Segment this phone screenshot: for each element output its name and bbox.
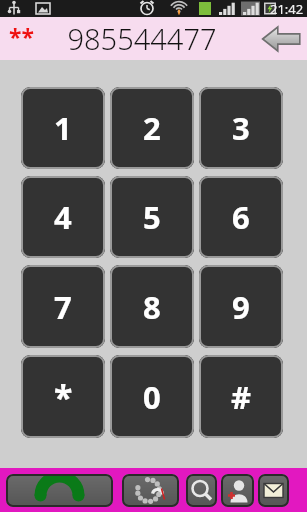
- staticText: 21:42: [270, 0, 304, 17]
- button[interactable]: Search: [186, 474, 217, 507]
- staticText: 6: [232, 196, 250, 238]
- staticText: 9: [232, 286, 250, 328]
- staticText: 1: [54, 107, 72, 149]
- staticText: **: [9, 21, 34, 52]
- staticText: 3: [232, 107, 250, 149]
- button[interactable]: 5: [110, 176, 194, 258]
- button[interactable]: Messages: [258, 474, 289, 507]
- button[interactable]: *: [21, 355, 105, 438]
- button[interactable]: 6: [199, 176, 283, 258]
- button[interactable]: #: [199, 355, 283, 438]
- button[interactable]: Add contact: [221, 474, 254, 507]
- staticText: 2: [143, 107, 161, 149]
- button[interactable]: **: [0, 17, 307, 60]
- staticText: *: [54, 374, 73, 420]
- staticText: 5: [143, 196, 161, 238]
- button[interactable]: Backspace: [259, 22, 303, 56]
- button[interactable]: 1: [21, 87, 105, 169]
- button[interactable]: 7: [21, 265, 105, 348]
- button[interactable]: 2: [110, 87, 194, 169]
- button[interactable]: 9: [199, 265, 283, 348]
- button[interactable]: 0: [110, 355, 194, 438]
- button[interactable]: 8: [110, 265, 194, 348]
- button[interactable]: 3: [199, 87, 283, 169]
- button[interactable]: 4: [21, 176, 105, 258]
- button[interactable]: Call: [6, 474, 113, 507]
- staticText: 4: [54, 196, 72, 238]
- staticText: #: [231, 376, 252, 418]
- staticText: 985544477: [67, 19, 217, 58]
- staticText: 0: [143, 376, 161, 418]
- button[interactable]: Dialer: [122, 474, 179, 507]
- staticText: 8: [143, 286, 161, 328]
- staticText: 7: [54, 286, 72, 328]
